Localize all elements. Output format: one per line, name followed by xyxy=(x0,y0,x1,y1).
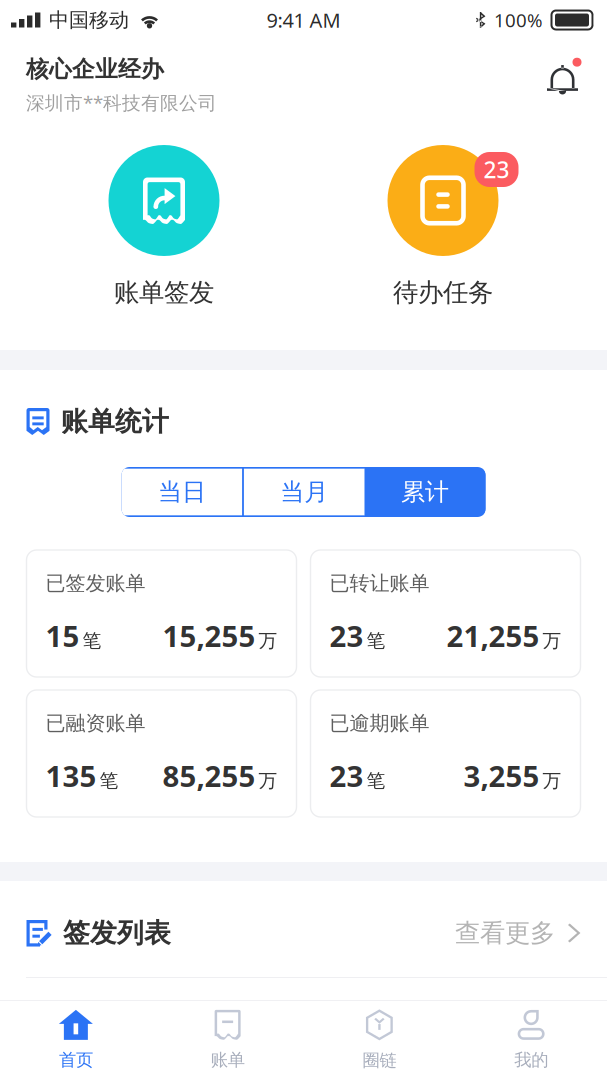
staticText: 85,255 xyxy=(162,756,255,795)
button[interactable]: 首页 xyxy=(0,1001,152,1079)
button[interactable]: 当日 xyxy=(121,469,242,515)
staticText: 中国移动 xyxy=(49,8,129,32)
button[interactable]: 累计 xyxy=(365,469,485,515)
staticText: 15,255 xyxy=(162,616,255,655)
staticText: 首页 xyxy=(59,1049,93,1071)
staticText: 待办任务 xyxy=(393,277,493,308)
staticText: 万 xyxy=(542,629,561,652)
staticText: 笔 xyxy=(82,629,101,652)
staticText: 累计 xyxy=(401,477,449,507)
staticText: 23 xyxy=(329,616,363,655)
staticText: 笔 xyxy=(99,769,118,792)
staticText: 深圳市**科技有限公司 xyxy=(26,90,217,115)
staticText: 当日 xyxy=(158,477,206,507)
staticText: 135 xyxy=(45,756,96,795)
button[interactable]: 23 xyxy=(361,145,524,308)
staticText: 圈链 xyxy=(362,1050,396,1071)
button[interactable]: 我的 xyxy=(455,1001,607,1079)
button[interactable]: 查看更多 xyxy=(455,917,581,948)
staticText: 23 xyxy=(329,756,363,795)
staticText: 笔 xyxy=(366,769,385,792)
staticText: 15 xyxy=(45,616,79,655)
staticText: 3,255 xyxy=(463,756,539,795)
staticText: 21,255 xyxy=(446,616,539,655)
staticText: 账单签发 xyxy=(114,277,214,308)
staticText: 当月 xyxy=(280,477,328,507)
staticText: 万 xyxy=(258,629,277,652)
staticText: 我的 xyxy=(514,1049,548,1071)
button[interactable]: Notifications xyxy=(544,55,584,97)
staticText: 账单 xyxy=(211,1049,245,1071)
button[interactable]: 当月 xyxy=(244,469,365,515)
button[interactable]: 账单签发 xyxy=(82,145,245,308)
staticText: 签发列表 xyxy=(63,917,171,949)
staticText: 已签发账单 xyxy=(45,571,145,596)
staticText: 23 xyxy=(483,154,509,184)
staticText: 笔 xyxy=(366,629,385,652)
staticText: 9:41 AM xyxy=(266,7,340,33)
button[interactable]: 账单 xyxy=(152,1001,304,1079)
staticText: 已逾期账单 xyxy=(329,711,429,736)
staticText: 查看更多 xyxy=(455,917,555,948)
staticText: 已融资账单 xyxy=(45,711,145,736)
staticText: 账单统计 xyxy=(61,405,169,438)
staticText: 核心企业经办 xyxy=(26,55,164,83)
staticText: 100% xyxy=(494,8,543,32)
staticText: 万 xyxy=(258,769,277,792)
staticText: 万 xyxy=(542,769,561,792)
staticText: 已转让账单 xyxy=(329,571,429,596)
button[interactable]: 圈链 xyxy=(303,1001,455,1079)
